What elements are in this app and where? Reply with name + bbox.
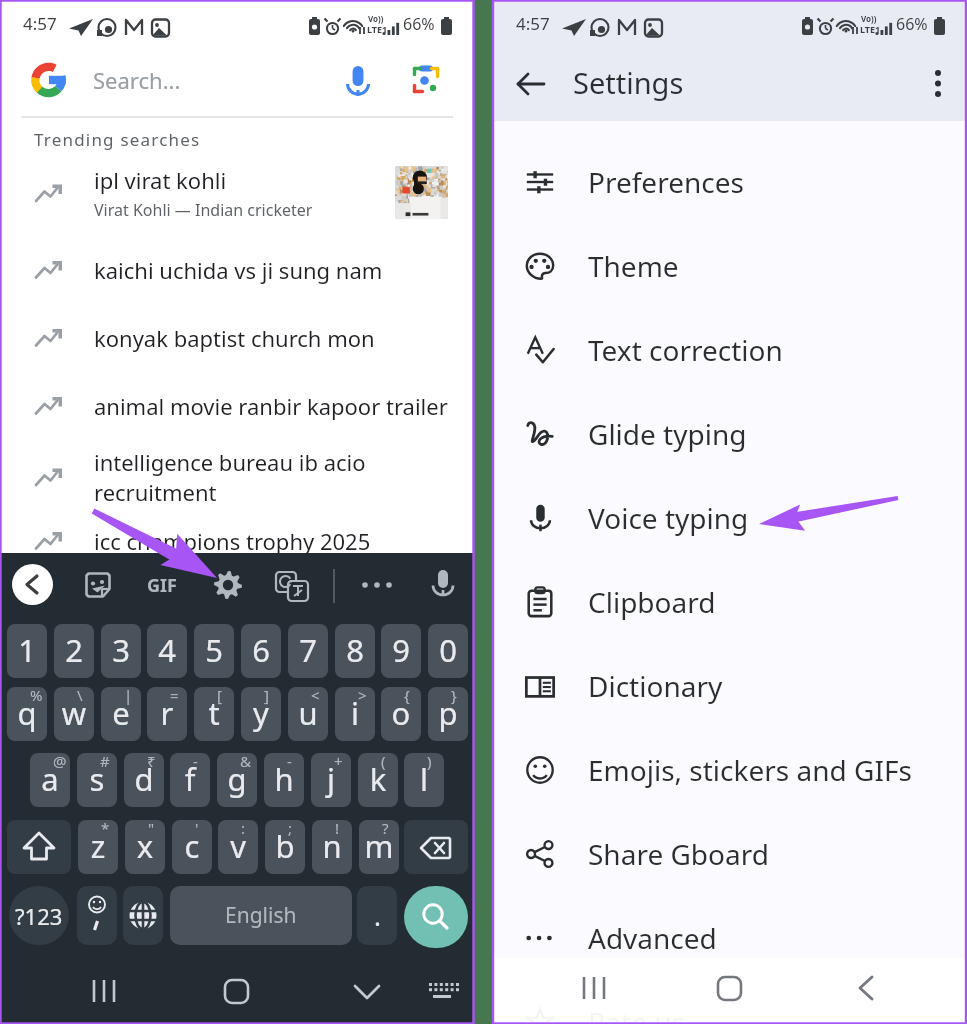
staticText: Text correction (588, 331, 783, 369)
button[interactable]: d (124, 753, 164, 807)
button[interactable]: v (218, 820, 258, 874)
button[interactable]: q (7, 687, 47, 741)
button[interactable]: Dictionary (494, 644, 966, 728)
staticText: ! (335, 820, 340, 838)
staticText: v (218, 825, 258, 867)
staticText: 9 (381, 629, 421, 671)
button[interactable]: a (30, 753, 70, 807)
button[interactable]: More options (356, 564, 398, 606)
button[interactable]: Voice typing (494, 476, 966, 560)
button[interactable]: Preferences (494, 140, 966, 224)
button[interactable]: p (428, 687, 468, 741)
staticText: t (194, 692, 234, 734)
button[interactable]: Text correction (494, 308, 966, 392)
button[interactable]: Key (123, 886, 163, 945)
button[interactable]: Advanced (494, 896, 966, 980)
staticText: + (334, 753, 343, 771)
button[interactable]: icc champions trophy 2025 (1, 508, 473, 573)
button[interactable]: 0 (428, 624, 468, 678)
button[interactable]: u (288, 687, 328, 741)
button[interactable]: r (147, 687, 187, 741)
staticText: ) (427, 753, 432, 771)
staticText: 4:57 (516, 12, 550, 35)
button[interactable]: l (404, 753, 444, 807)
staticText: LTE1 (860, 23, 881, 35)
staticText: ( (381, 753, 386, 771)
staticText: % (30, 687, 43, 705)
staticText: 3 (101, 629, 141, 671)
button[interactable]: t (194, 687, 234, 741)
button[interactable]: . (357, 886, 397, 945)
button[interactable]: ipl virat kohli (1, 158, 473, 228)
staticText: i (335, 692, 375, 734)
button[interactable]: Emojis, stickers and GIFs (494, 728, 966, 812)
button[interactable]: z (78, 820, 118, 874)
staticText: s (77, 758, 117, 800)
staticText: : (241, 820, 246, 838)
button[interactable]: y (241, 687, 281, 741)
button[interactable]: Theme (494, 224, 966, 308)
staticText: ; (288, 820, 293, 838)
button[interactable]: n (312, 820, 352, 874)
staticText: 66% (403, 13, 435, 35)
staticText: Settings (573, 63, 684, 102)
button[interactable]: 1 (7, 624, 47, 678)
button[interactable]: kaichi uchida vs ji sung nam (1, 237, 473, 302)
button[interactable]: 7 (288, 624, 328, 678)
button[interactable]: Back (12, 564, 53, 605)
button[interactable]: s (77, 753, 117, 807)
button[interactable]: 3 (101, 624, 141, 678)
button[interactable]: c (172, 820, 212, 874)
button[interactable]: Stickers (77, 564, 119, 606)
button[interactable]: English (170, 886, 352, 945)
staticText: p (428, 692, 468, 734)
button[interactable]: m (359, 820, 399, 874)
button[interactable]: animal movie ranbir kapoor trailer (1, 373, 473, 438)
button[interactable]: Key (404, 820, 468, 874)
button[interactable]: h (264, 753, 304, 807)
button[interactable]: konyak baptist church mon (1, 305, 473, 370)
staticText: kaichi uchida vs ji sung nam (94, 255, 383, 285)
button[interactable]: 6 (241, 624, 281, 678)
staticText: 7 (288, 629, 328, 671)
button[interactable]: 9 (381, 624, 421, 678)
button[interactable]: GIF (141, 564, 183, 606)
button[interactable]: Settings (207, 564, 249, 606)
button[interactable]: Share Gboard (494, 812, 966, 896)
button[interactable]: k (358, 753, 398, 807)
button[interactable]: ?123 (9, 886, 69, 945)
button[interactable]: intelligence bureau ib acio (1, 434, 473, 520)
staticText: Preferences (588, 163, 744, 201)
button[interactable]: Key (7, 820, 71, 874)
button[interactable]: Key (77, 886, 117, 945)
button[interactable]: More options (918, 64, 958, 104)
button[interactable]: 2 (54, 624, 94, 678)
button[interactable]: f (170, 753, 210, 807)
button[interactable]: w (54, 687, 94, 741)
button[interactable]: 5 (194, 624, 234, 678)
staticText: ? (382, 820, 389, 838)
staticText: ipl virat kohli (94, 165, 227, 195)
staticText: r (147, 692, 187, 734)
button[interactable]: e (101, 687, 141, 741)
button[interactable]: Voice input (422, 564, 464, 606)
button[interactable]: x (125, 820, 165, 874)
button[interactable]: g (217, 753, 257, 807)
button[interactable]: Glide typing (494, 392, 966, 476)
button[interactable]: Clipboard (494, 560, 966, 644)
staticText: l (404, 758, 444, 800)
button[interactable]: Search (404, 886, 468, 948)
staticText: y (241, 692, 281, 734)
button[interactable]: 4 (147, 624, 187, 678)
button[interactable]: Back (513, 64, 553, 104)
button[interactable]: 8 (335, 624, 375, 678)
button[interactable]: o (381, 687, 421, 741)
button[interactable]: i (335, 687, 375, 741)
staticText: m (359, 825, 399, 867)
staticText: f (170, 758, 210, 800)
button[interactable]: Translate (271, 564, 313, 606)
button[interactable]: b (265, 820, 305, 874)
button[interactable]: Rate us (494, 980, 966, 1024)
button[interactable]: j (311, 753, 351, 807)
staticText: g (217, 758, 257, 800)
